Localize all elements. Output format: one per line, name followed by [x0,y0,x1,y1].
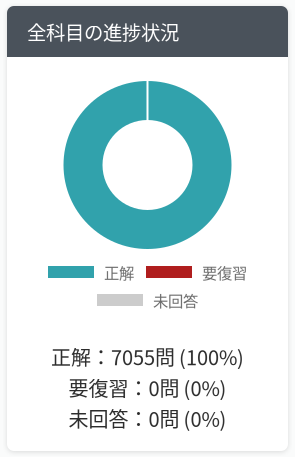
staticText: 未回答：0問 (0%) [68,404,226,433]
staticText: 正解 [104,261,134,283]
staticText: 未回答 [153,289,198,311]
staticText: 全科目の進捗状況 [27,17,179,45]
staticText: 要復習：0問 (0%) [68,373,226,402]
staticText: 正解：7055問 (100%) [51,342,244,371]
staticText: 要復習 [202,261,247,283]
